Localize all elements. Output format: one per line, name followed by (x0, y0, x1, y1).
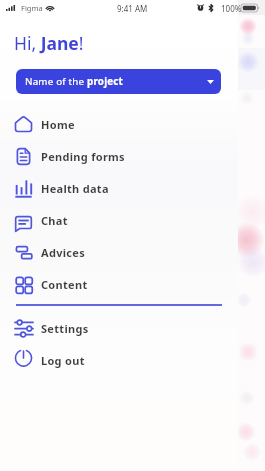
button[interactable]: Home (0, 108, 238, 140)
button[interactable]: Health data (0, 172, 238, 204)
staticText: Log out (41, 353, 85, 368)
button[interactable]: Name of the project (16, 69, 221, 94)
staticText: Chat (41, 213, 68, 228)
button[interactable]: Pending forms (0, 140, 238, 172)
staticText: Figma (21, 3, 43, 13)
staticText: Advices (41, 245, 85, 260)
button[interactable]: Advices (0, 236, 238, 268)
staticText: Pending forms (41, 149, 125, 164)
staticText: 100% (221, 3, 242, 14)
button[interactable]: Content (0, 268, 238, 300)
staticText: Hi, Jane! (14, 31, 84, 55)
staticText: 9:41 AM (117, 3, 148, 14)
staticText: Home (41, 117, 75, 132)
staticText: Name of the project (25, 75, 124, 88)
staticText: Health data (41, 181, 109, 196)
button[interactable]: Log out (0, 344, 238, 376)
button[interactable]: Settings (0, 312, 238, 344)
staticText: Settings (41, 321, 89, 336)
staticText: Content (41, 277, 88, 292)
button[interactable]: Chat (0, 204, 238, 236)
